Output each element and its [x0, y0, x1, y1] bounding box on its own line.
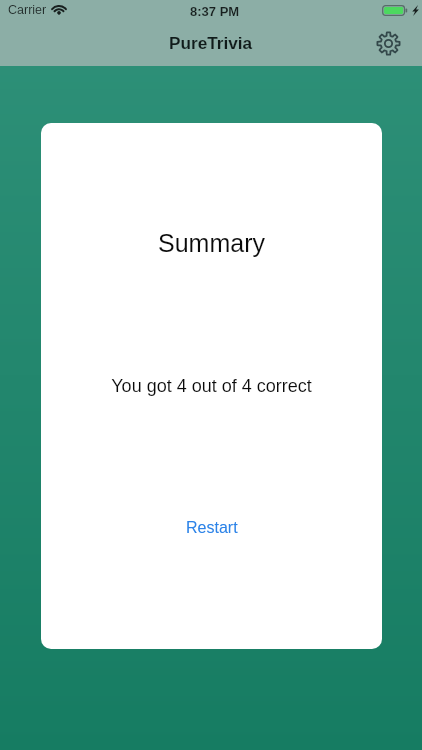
- button[interactable]: Settings: [370, 25, 406, 61]
- staticText: Summary: [41, 229, 382, 257]
- staticText: Restart: [186, 519, 238, 537]
- staticText: PureTrivia: [169, 33, 253, 52]
- staticText: 8:37 PM: [190, 4, 240, 19]
- staticText: Carrier: [8, 3, 47, 17]
- button[interactable]: Restart: [174, 514, 250, 542]
- staticText: You got 4 out of 4 correct: [41, 376, 382, 396]
